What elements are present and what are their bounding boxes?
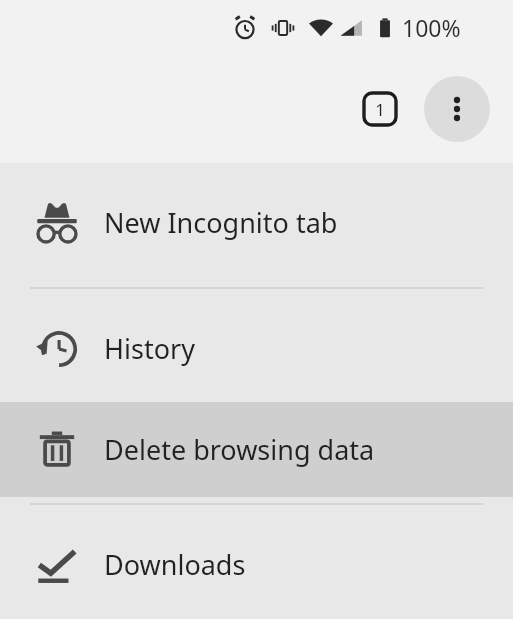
button[interactable]: Tabs, 1 open xyxy=(360,89,400,129)
button[interactable]: Downloads xyxy=(0,510,513,619)
staticText: Downloads xyxy=(104,546,246,583)
button[interactable]: Delete browsing data xyxy=(0,402,513,497)
staticText: 100% xyxy=(402,12,461,43)
staticText: 1 xyxy=(375,98,385,121)
staticText: History xyxy=(104,330,195,367)
button[interactable]: History xyxy=(0,294,513,402)
button[interactable]: New Incognito tab xyxy=(0,163,513,281)
staticText: New Incognito tab xyxy=(104,204,338,241)
button[interactable]: More options xyxy=(424,76,490,142)
staticText: Delete browsing data xyxy=(104,431,375,468)
